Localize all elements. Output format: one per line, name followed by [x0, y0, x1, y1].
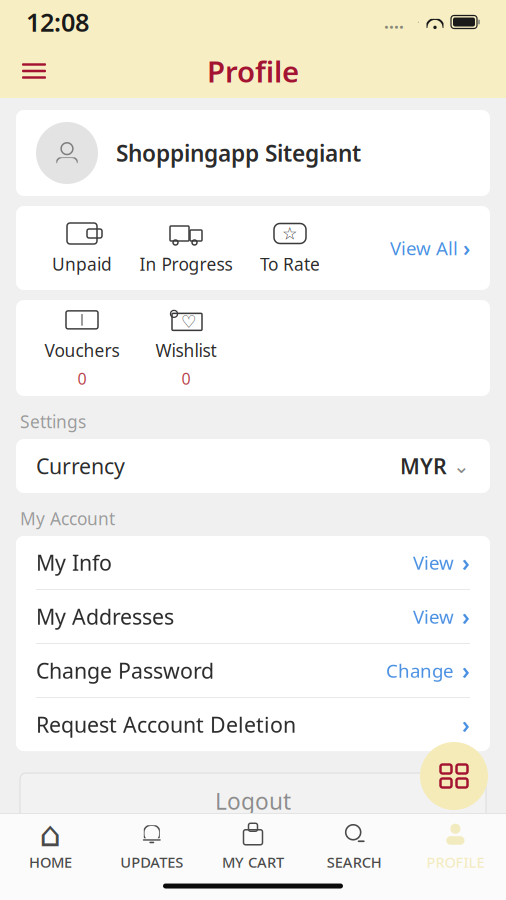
staticText: 0: [181, 368, 190, 389]
button[interactable]: My Info: [16, 536, 490, 589]
staticText: View: [413, 550, 454, 575]
staticText: ›: [463, 234, 470, 262]
staticText: ⌂: [40, 815, 62, 854]
staticText: Change: [386, 658, 454, 683]
button[interactable]: MY CART: [202, 814, 304, 872]
button[interactable]: PROFILE: [405, 814, 506, 872]
staticText: ◗: [418, 21, 419, 23]
staticText: Wishlist: [155, 339, 216, 362]
staticText: View: [413, 604, 454, 629]
staticText: MY CART: [222, 852, 284, 872]
staticText: Logout: [215, 786, 291, 816]
staticText: 0: [77, 368, 86, 389]
button[interactable]: Currency: [16, 439, 490, 493]
button[interactable]: UPDATES: [101, 814, 202, 872]
button[interactable]: In Progress: [134, 216, 238, 279]
staticText: SEARCH: [327, 852, 382, 872]
staticText: In Progress: [139, 252, 232, 275]
staticText: ›: [462, 709, 470, 740]
staticText: ☆: [282, 224, 298, 243]
staticText: Vouchers: [44, 339, 119, 362]
staticText: ....: [384, 10, 404, 33]
staticText: ›: [462, 601, 470, 632]
staticText: MYR: [400, 452, 447, 480]
button[interactable]: My Addresses: [16, 590, 490, 643]
button[interactable]: Change Password: [16, 644, 490, 697]
staticText: ♡: [181, 312, 197, 332]
button[interactable]: ⌂: [0, 814, 101, 872]
staticText: Shoppingapp Sitegiant: [116, 138, 361, 168]
staticText: Currency: [36, 452, 125, 480]
staticText: My Addresses: [36, 602, 174, 631]
staticText: Request Account Deletion: [36, 710, 296, 739]
button[interactable]: ☆: [238, 216, 342, 279]
staticText: UPDATES: [120, 852, 183, 872]
button[interactable]: Request Account Deletion: [16, 698, 490, 751]
staticText: To Rate: [260, 252, 320, 275]
staticText: ›: [462, 547, 470, 578]
staticText: Settings: [20, 410, 86, 433]
staticText: ›: [462, 655, 470, 686]
button[interactable]: Unpaid: [30, 216, 134, 279]
staticText: View All: [390, 236, 458, 260]
staticText: My Account: [20, 507, 115, 530]
staticText: PROFILE: [426, 852, 484, 872]
button[interactable]: View All: [384, 228, 476, 268]
staticText: Profile: [207, 51, 299, 90]
button[interactable]: Logout: [20, 773, 486, 829]
staticText: 12:08: [26, 5, 89, 39]
button[interactable]: Menu: [12, 49, 56, 93]
button[interactable]: Shoppingapp Sitegiant: [16, 110, 490, 196]
staticText: HOME: [29, 852, 72, 872]
staticText: My Info: [36, 548, 112, 577]
staticText: ⌄: [447, 455, 470, 477]
button[interactable]: Vouchers: [30, 303, 134, 393]
staticText: Unpaid: [52, 252, 112, 275]
button[interactable]: SEARCH: [304, 814, 405, 872]
staticText: Change Password: [36, 656, 214, 685]
button[interactable]: ♡: [134, 303, 238, 393]
button[interactable]: Quick menu: [418, 740, 490, 812]
